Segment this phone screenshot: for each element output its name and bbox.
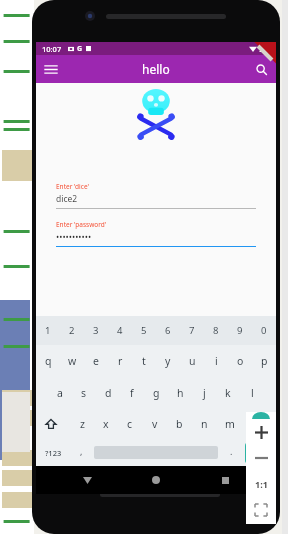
- button[interactable]: m: [217, 409, 242, 439]
- staticText: a: [57, 386, 63, 400]
- staticText: n: [201, 417, 208, 431]
- button[interactable]: k: [216, 377, 240, 409]
- staticText: 7: [189, 324, 195, 337]
- staticText: o: [237, 354, 244, 368]
- button[interactable]: a: [48, 377, 72, 409]
- button[interactable]: c: [118, 409, 142, 439]
- staticText: Enter 'dice': [56, 182, 89, 191]
- button[interactable]: Backspace: [246, 409, 276, 439]
- staticText: z: [80, 417, 85, 431]
- staticText: 5: [141, 324, 147, 337]
- button[interactable]: Fit to window: [246, 497, 276, 523]
- button[interactable]: l: [240, 377, 264, 409]
- staticText: e: [93, 354, 99, 368]
- button[interactable]: ?123: [36, 439, 70, 466]
- staticText: b: [176, 417, 183, 431]
- button[interactable]: q: [36, 345, 60, 377]
- button[interactable]: n: [192, 409, 217, 439]
- staticText: c: [127, 417, 133, 431]
- button[interactable]: o: [228, 345, 252, 377]
- button[interactable]: p: [252, 345, 276, 377]
- staticText: v: [152, 417, 158, 431]
- staticText: .: [230, 445, 233, 457]
- staticText: 6: [165, 324, 171, 337]
- staticText: Enter 'password': [56, 220, 107, 229]
- staticText: 3: [93, 324, 99, 337]
- button[interactable]: .: [220, 439, 242, 466]
- button[interactable]: 4: [108, 316, 132, 345]
- staticText: 1:1: [255, 478, 268, 490]
- button[interactable]: x: [94, 409, 118, 439]
- button[interactable]: g: [144, 377, 168, 409]
- staticText: hello: [142, 61, 170, 77]
- button[interactable]: r: [108, 345, 132, 377]
- button[interactable]: s: [72, 377, 96, 409]
- staticText: k: [225, 386, 231, 400]
- button[interactable]: Shift: [36, 409, 66, 439]
- button[interactable]: u: [180, 345, 204, 377]
- button[interactable]: Zoom in: [246, 419, 276, 445]
- staticText: x: [103, 417, 109, 431]
- button[interactable]: y: [156, 345, 180, 377]
- button[interactable]: v: [142, 409, 167, 439]
- button[interactable]: h: [168, 377, 192, 409]
- staticText: G: [77, 44, 83, 54]
- staticText: l: [251, 386, 254, 400]
- button[interactable]: 5: [132, 316, 156, 345]
- staticText: g: [153, 386, 160, 400]
- button[interactable]: z: [70, 409, 94, 439]
- button[interactable]: e: [84, 345, 108, 377]
- staticText: w: [68, 354, 77, 368]
- staticText: s: [81, 386, 87, 400]
- staticText: •••••••••••: [56, 231, 92, 243]
- button[interactable]: b: [167, 409, 192, 439]
- staticText: r: [118, 354, 123, 368]
- button[interactable]: i: [204, 345, 228, 377]
- button[interactable]: Zoom out: [246, 445, 276, 471]
- button[interactable]: t: [132, 345, 156, 377]
- staticText: j: [203, 386, 206, 400]
- staticText: f: [130, 386, 134, 400]
- button[interactable]: 1:1: [246, 471, 276, 497]
- button[interactable]: w: [60, 345, 84, 377]
- staticText: 10:07: [42, 44, 62, 54]
- staticText: 1: [45, 324, 51, 337]
- staticText: t: [142, 354, 146, 368]
- button[interactable]: Back: [69, 466, 105, 494]
- button[interactable]: Enter 'dice': [56, 182, 256, 209]
- staticText: d: [105, 386, 112, 400]
- button[interactable]: 3: [84, 316, 108, 345]
- staticText: y: [165, 354, 171, 368]
- button[interactable]: 2: [60, 316, 84, 345]
- button[interactable]: Enter: [245, 442, 273, 464]
- button[interactable]: Enter 'password': [56, 220, 256, 247]
- button[interactable]: 6: [156, 316, 180, 345]
- staticText: ,: [80, 445, 83, 457]
- button[interactable]: d: [96, 377, 120, 409]
- button[interactable]: Open navigation menu: [40, 58, 62, 80]
- staticText: u: [189, 354, 196, 368]
- button[interactable]: 7: [180, 316, 204, 345]
- staticText: 4: [117, 324, 123, 337]
- button[interactable]: 9: [228, 316, 252, 345]
- button[interactable]: 1: [36, 316, 60, 345]
- button[interactable]: f: [120, 377, 144, 409]
- button[interactable]: j: [192, 377, 216, 409]
- staticText: ?123: [45, 448, 62, 458]
- button[interactable]: Search: [250, 58, 272, 80]
- staticText: 0: [261, 324, 267, 337]
- staticText: i: [215, 354, 218, 368]
- button[interactable]: ,: [70, 439, 92, 466]
- staticText: dice2: [56, 193, 78, 205]
- staticText: q: [45, 354, 52, 368]
- staticText: 8: [213, 324, 219, 337]
- button[interactable]: Recent apps: [207, 466, 243, 494]
- staticText: p: [261, 354, 268, 368]
- staticText: h: [177, 386, 184, 400]
- button[interactable]: 8: [204, 316, 228, 345]
- button[interactable]: Home: [138, 466, 174, 494]
- button[interactable]: 0: [252, 316, 276, 345]
- staticText: 2: [69, 324, 75, 337]
- staticText: 9: [237, 324, 243, 337]
